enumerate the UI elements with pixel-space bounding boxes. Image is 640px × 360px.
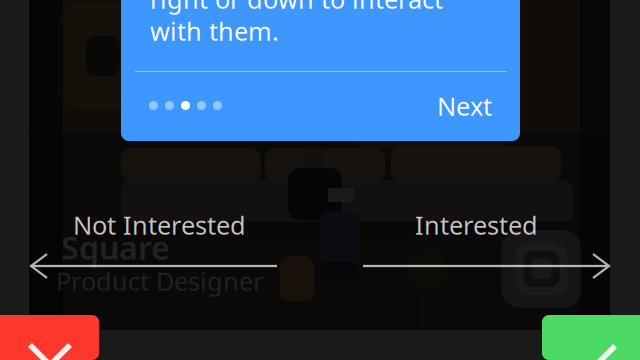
- staticText: Next: [437, 89, 492, 123]
- staticText: with them.: [150, 14, 279, 48]
- staticText: right or down to interact: [150, 0, 443, 16]
- staticText: Interested: [415, 208, 538, 242]
- button[interactable]: Not interested: [0, 315, 99, 360]
- staticText: Not Interested: [73, 208, 246, 242]
- staticText: Square: [61, 226, 170, 268]
- button[interactable]: Interested: [542, 315, 640, 360]
- staticText: Product Designer: [56, 264, 263, 298]
- button[interactable]: Next: [406, 84, 492, 128]
